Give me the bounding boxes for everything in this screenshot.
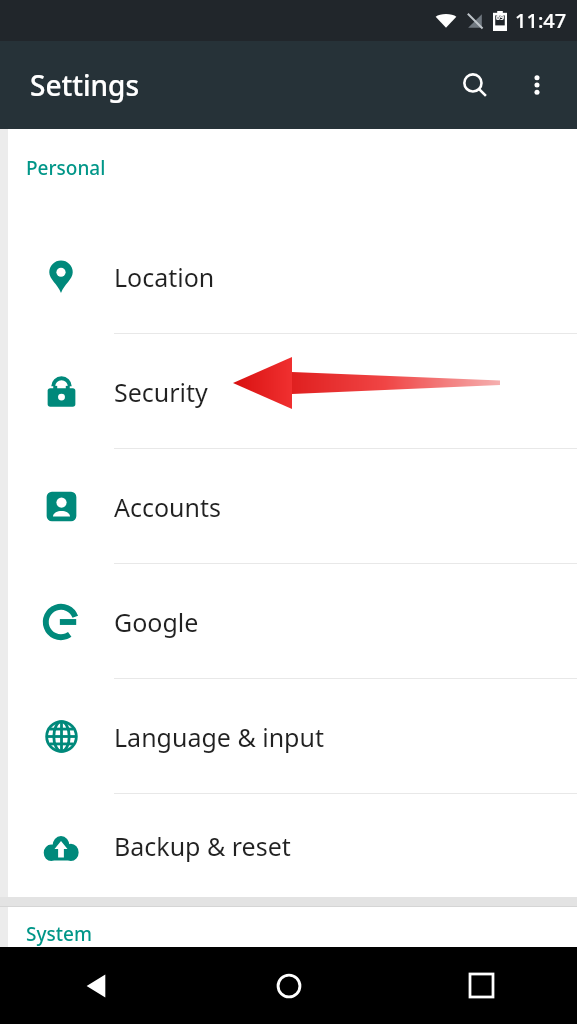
button[interactable]: Search xyxy=(449,59,501,111)
staticText: Accounts xyxy=(114,490,222,524)
staticText: Security xyxy=(114,375,208,409)
staticText: Personal xyxy=(26,155,106,181)
staticText: System xyxy=(26,921,92,947)
staticText: 69 xyxy=(496,13,505,23)
button[interactable]: Security xyxy=(8,334,577,449)
button[interactable]: Backup & reset xyxy=(8,794,577,897)
staticText: Backup & reset xyxy=(114,829,291,863)
button[interactable]: Location xyxy=(8,219,577,334)
button[interactable]: Accounts xyxy=(8,449,577,564)
staticText: Google xyxy=(114,605,199,639)
staticText: Settings xyxy=(30,66,140,104)
staticText: Language & input xyxy=(114,720,324,754)
button[interactable]: Back xyxy=(0,947,193,1024)
button[interactable]: Home xyxy=(193,947,385,1024)
button[interactable]: Google xyxy=(8,564,577,679)
staticText: 11:47 xyxy=(515,7,567,34)
button[interactable]: Language & input xyxy=(8,679,577,794)
staticText: Location xyxy=(114,260,215,294)
button[interactable]: Recent apps xyxy=(385,947,577,1024)
button[interactable]: More options xyxy=(515,63,559,107)
